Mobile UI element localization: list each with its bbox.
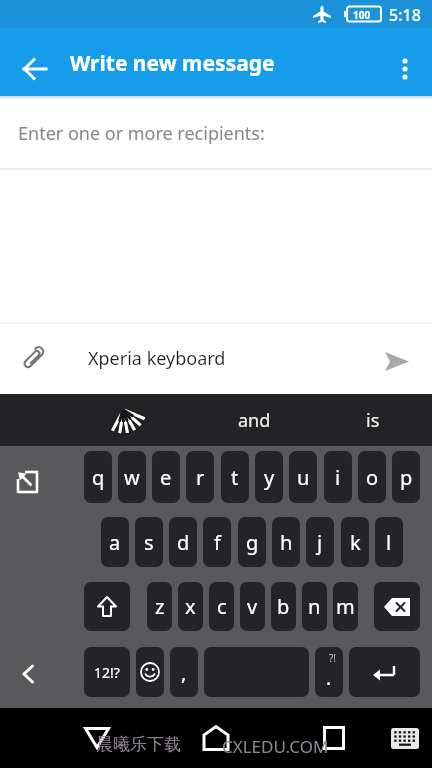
staticText: d: [177, 529, 190, 556]
staticText: Xperia keyboard: [88, 346, 226, 371]
button[interactable]: [10, 335, 56, 381]
staticText: p: [400, 464, 413, 491]
staticText: 晨曦乐下载: [96, 734, 181, 755]
button[interactable]: is: [315, 394, 431, 446]
button[interactable]: [6, 460, 50, 504]
button[interactable]: d: [169, 517, 197, 567]
button[interactable]: [385, 48, 425, 94]
button[interactable]: v: [240, 582, 265, 631]
button[interactable]: [6, 652, 50, 696]
staticText: ?!: [329, 651, 337, 665]
button[interactable]: 12!?: [84, 647, 130, 697]
button[interactable]: a: [101, 517, 129, 567]
staticText: w: [124, 464, 140, 491]
button[interactable]: k: [341, 517, 369, 567]
button[interactable]: n: [302, 582, 327, 631]
button[interactable]: [136, 647, 164, 697]
button[interactable]: [204, 647, 309, 697]
staticText: u: [297, 464, 310, 491]
staticText: l: [386, 529, 392, 556]
button[interactable]: and: [196, 394, 312, 446]
staticText: z: [155, 593, 165, 620]
button[interactable]: [73, 715, 121, 761]
staticText: x: [185, 593, 196, 620]
button[interactable]: c: [209, 582, 234, 631]
button[interactable]: [374, 582, 420, 631]
staticText: k: [350, 529, 361, 556]
staticText: Enter one or more recipients:: [18, 121, 265, 146]
button[interactable]: u: [289, 451, 317, 503]
button[interactable]: [103, 400, 159, 440]
button[interactable]: r: [186, 451, 214, 503]
button[interactable]: h: [272, 517, 300, 567]
button[interactable]: y: [255, 451, 283, 503]
staticText: v: [247, 593, 258, 620]
button[interactable]: [192, 715, 240, 761]
button[interactable]: m: [333, 582, 358, 631]
button[interactable]: [84, 582, 130, 631]
staticText: s: [144, 529, 154, 556]
staticText: g: [246, 529, 259, 556]
staticText: .: [326, 665, 332, 691]
staticText: ,: [181, 659, 187, 686]
staticText: and: [238, 408, 271, 433]
staticText: 12!?: [94, 663, 120, 682]
staticText: j: [317, 529, 323, 556]
staticText: t: [231, 464, 239, 491]
button[interactable]: ,: [170, 647, 198, 697]
button[interactable]: i: [324, 451, 352, 503]
staticText: i: [335, 464, 341, 491]
staticText: e: [160, 464, 172, 491]
button[interactable]: b: [271, 582, 296, 631]
staticText: q: [92, 464, 105, 491]
staticText: is: [366, 408, 380, 433]
staticText: b: [277, 593, 290, 620]
button[interactable]: z: [147, 582, 172, 631]
button[interactable]: l: [375, 517, 403, 567]
button[interactable]: t: [221, 451, 249, 503]
button[interactable]: w: [118, 451, 146, 503]
button[interactable]: [374, 338, 420, 384]
button[interactable]: [12, 46, 58, 92]
button[interactable]: f: [203, 517, 231, 567]
button[interactable]: j: [306, 517, 334, 567]
staticText: 5:18: [389, 4, 421, 26]
staticText: Write new message: [70, 49, 275, 78]
button[interactable]: Enter one or more recipients:: [0, 96, 432, 170]
staticText: f: [214, 529, 221, 556]
staticText: m: [336, 593, 355, 620]
staticText: CXLEDU.COM: [222, 735, 329, 758]
staticText: h: [280, 529, 293, 556]
button[interactable]: q: [84, 451, 112, 503]
button[interactable]: ?!: [315, 647, 343, 697]
button[interactable]: o: [358, 451, 386, 503]
button[interactable]: [310, 715, 358, 761]
staticText: y: [264, 464, 275, 491]
button[interactable]: e: [152, 451, 180, 503]
button[interactable]: [349, 647, 420, 697]
staticText: r: [196, 464, 205, 491]
button[interactable]: s: [135, 517, 163, 567]
button[interactable]: p: [392, 451, 420, 503]
button[interactable]: g: [238, 517, 266, 567]
staticText: c: [217, 593, 227, 620]
button[interactable]: [388, 722, 422, 754]
button[interactable]: x: [178, 582, 203, 631]
staticText: 100: [353, 8, 371, 22]
staticText: a: [109, 529, 121, 556]
staticText: o: [366, 464, 379, 491]
staticText: n: [308, 593, 321, 620]
